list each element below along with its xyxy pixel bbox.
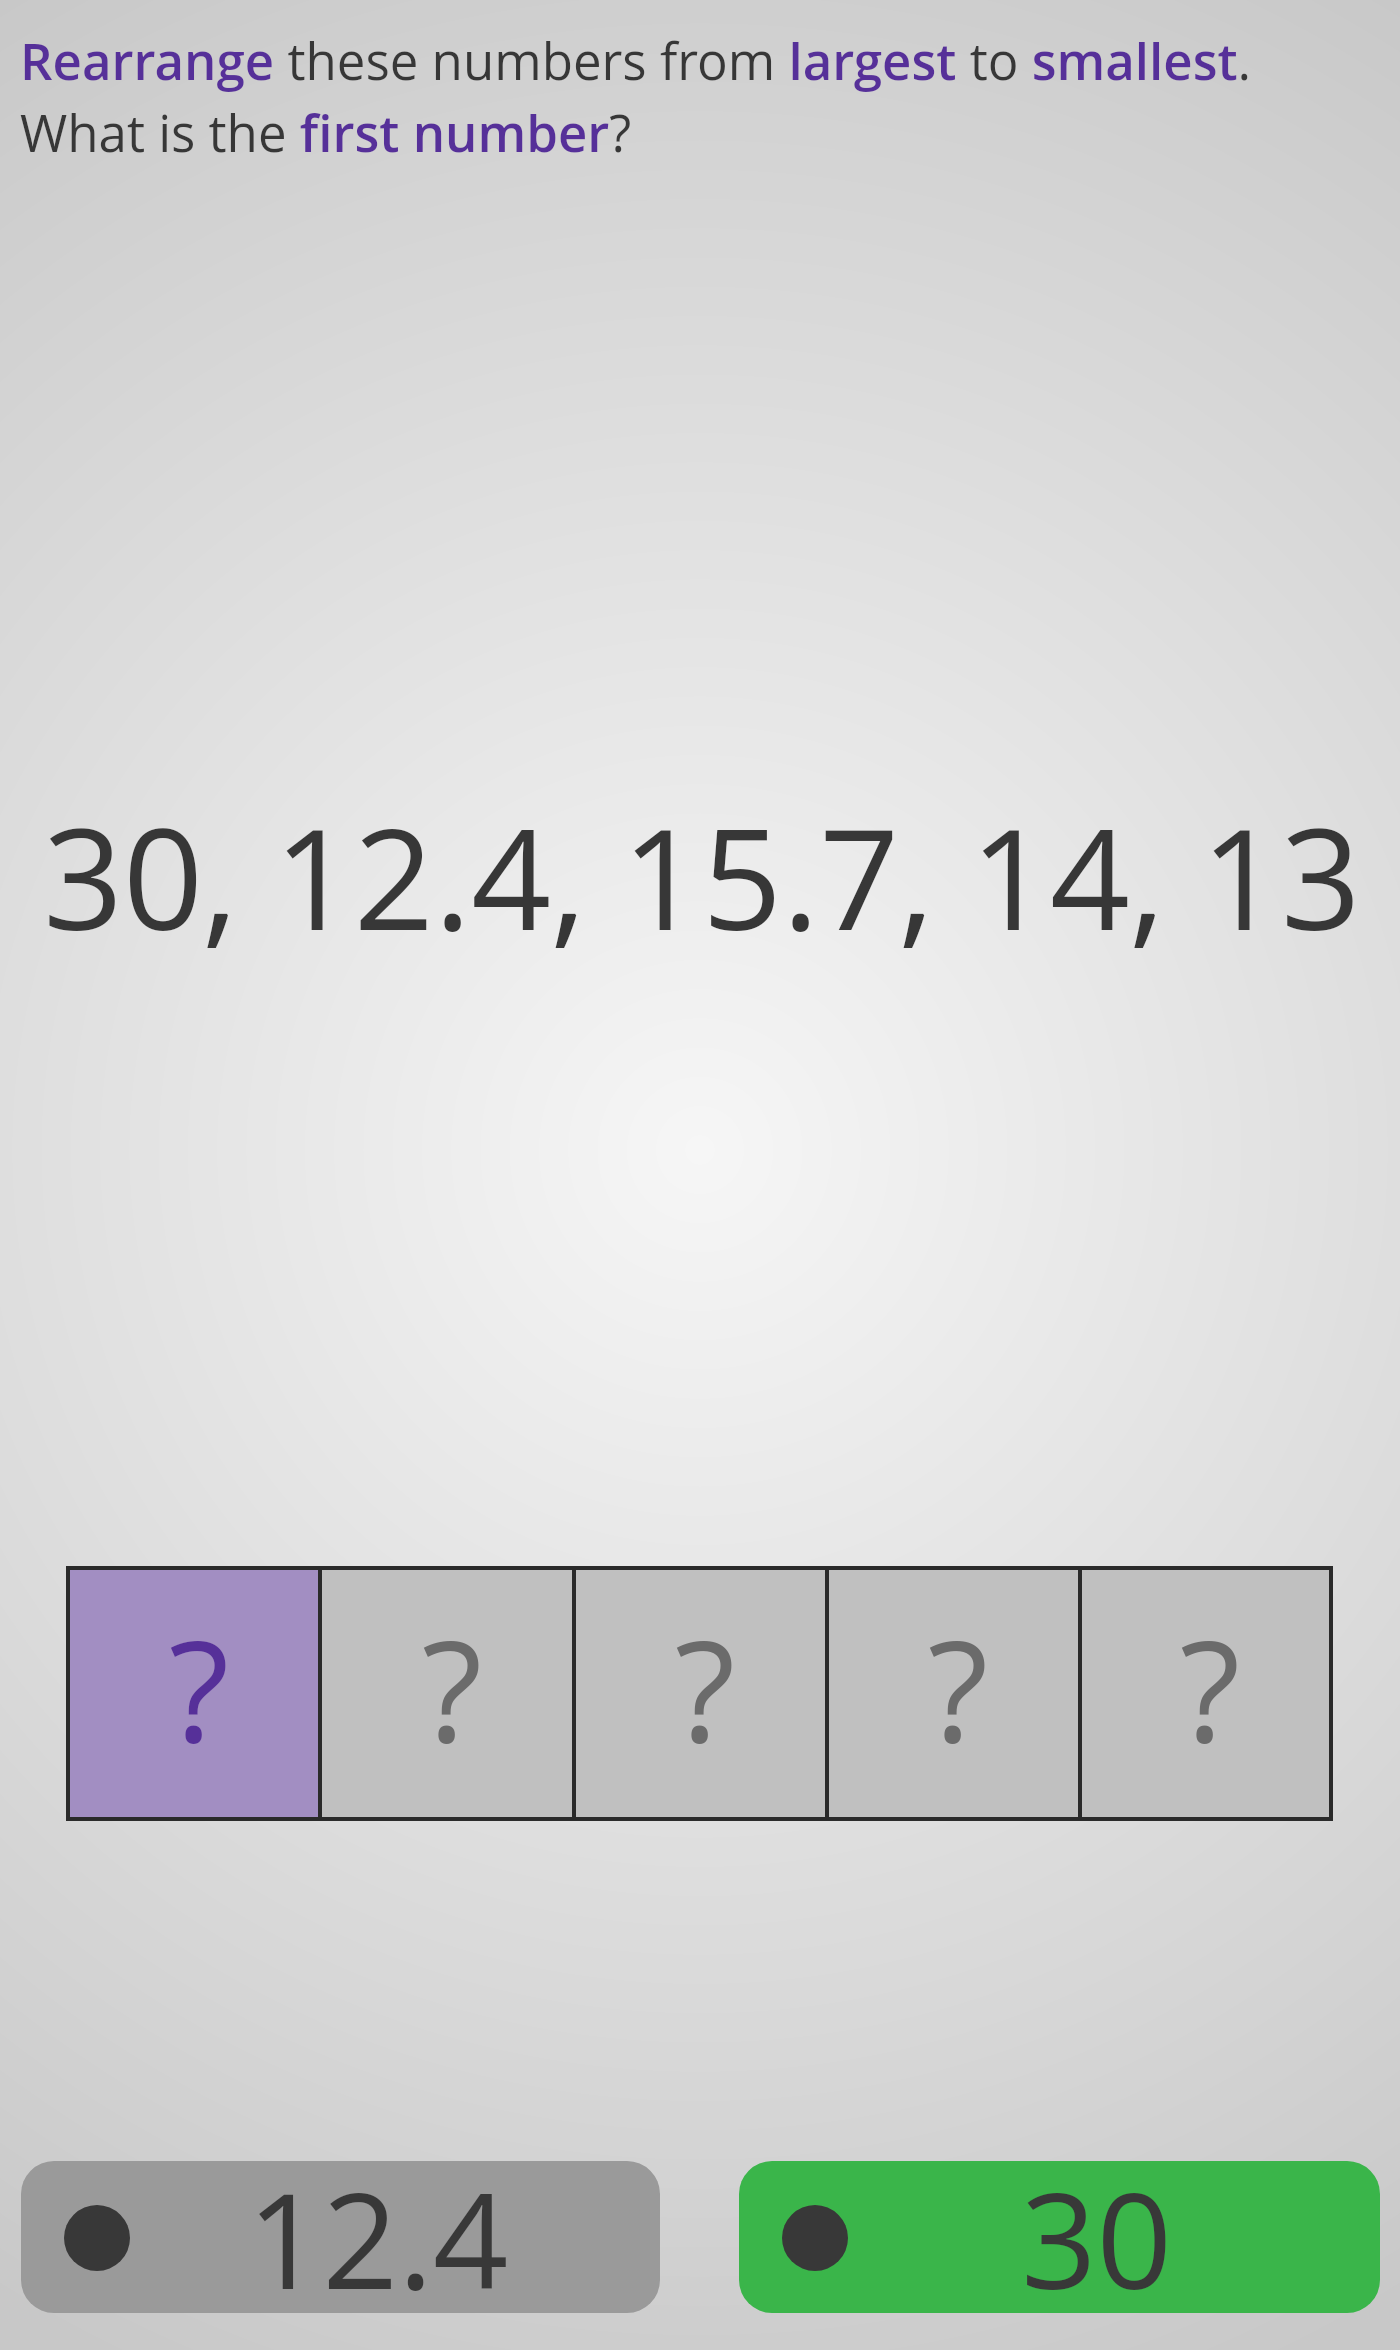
staticText: 30 <box>1021 2161 1172 2300</box>
button[interactable]: Answer slot 2, empty <box>322 1570 572 1817</box>
staticText: ? <box>928 1592 989 1783</box>
staticText: 12.4 <box>247 2161 509 2300</box>
button[interactable]: Answer slot 4, empty <box>829 1570 1078 1817</box>
button[interactable]: Answer slot 5, empty <box>1082 1570 1329 1817</box>
button[interactable]: 12.4 <box>21 2161 660 2313</box>
button[interactable]: Answer slot 1, empty <box>70 1570 318 1817</box>
button[interactable]: Answer slot 3, empty <box>576 1570 825 1817</box>
button[interactable]: 30 <box>739 2161 1380 2313</box>
staticText: ? <box>1180 1592 1241 1783</box>
staticText: ? <box>422 1592 483 1783</box>
staticText: 30, 12.4, 15.7, 14, 13 <box>43 780 1361 971</box>
staticText: ? <box>675 1592 736 1783</box>
staticText: Rearrange these numbers from largest to … <box>20 25 1252 167</box>
staticText: ? <box>169 1592 230 1783</box>
